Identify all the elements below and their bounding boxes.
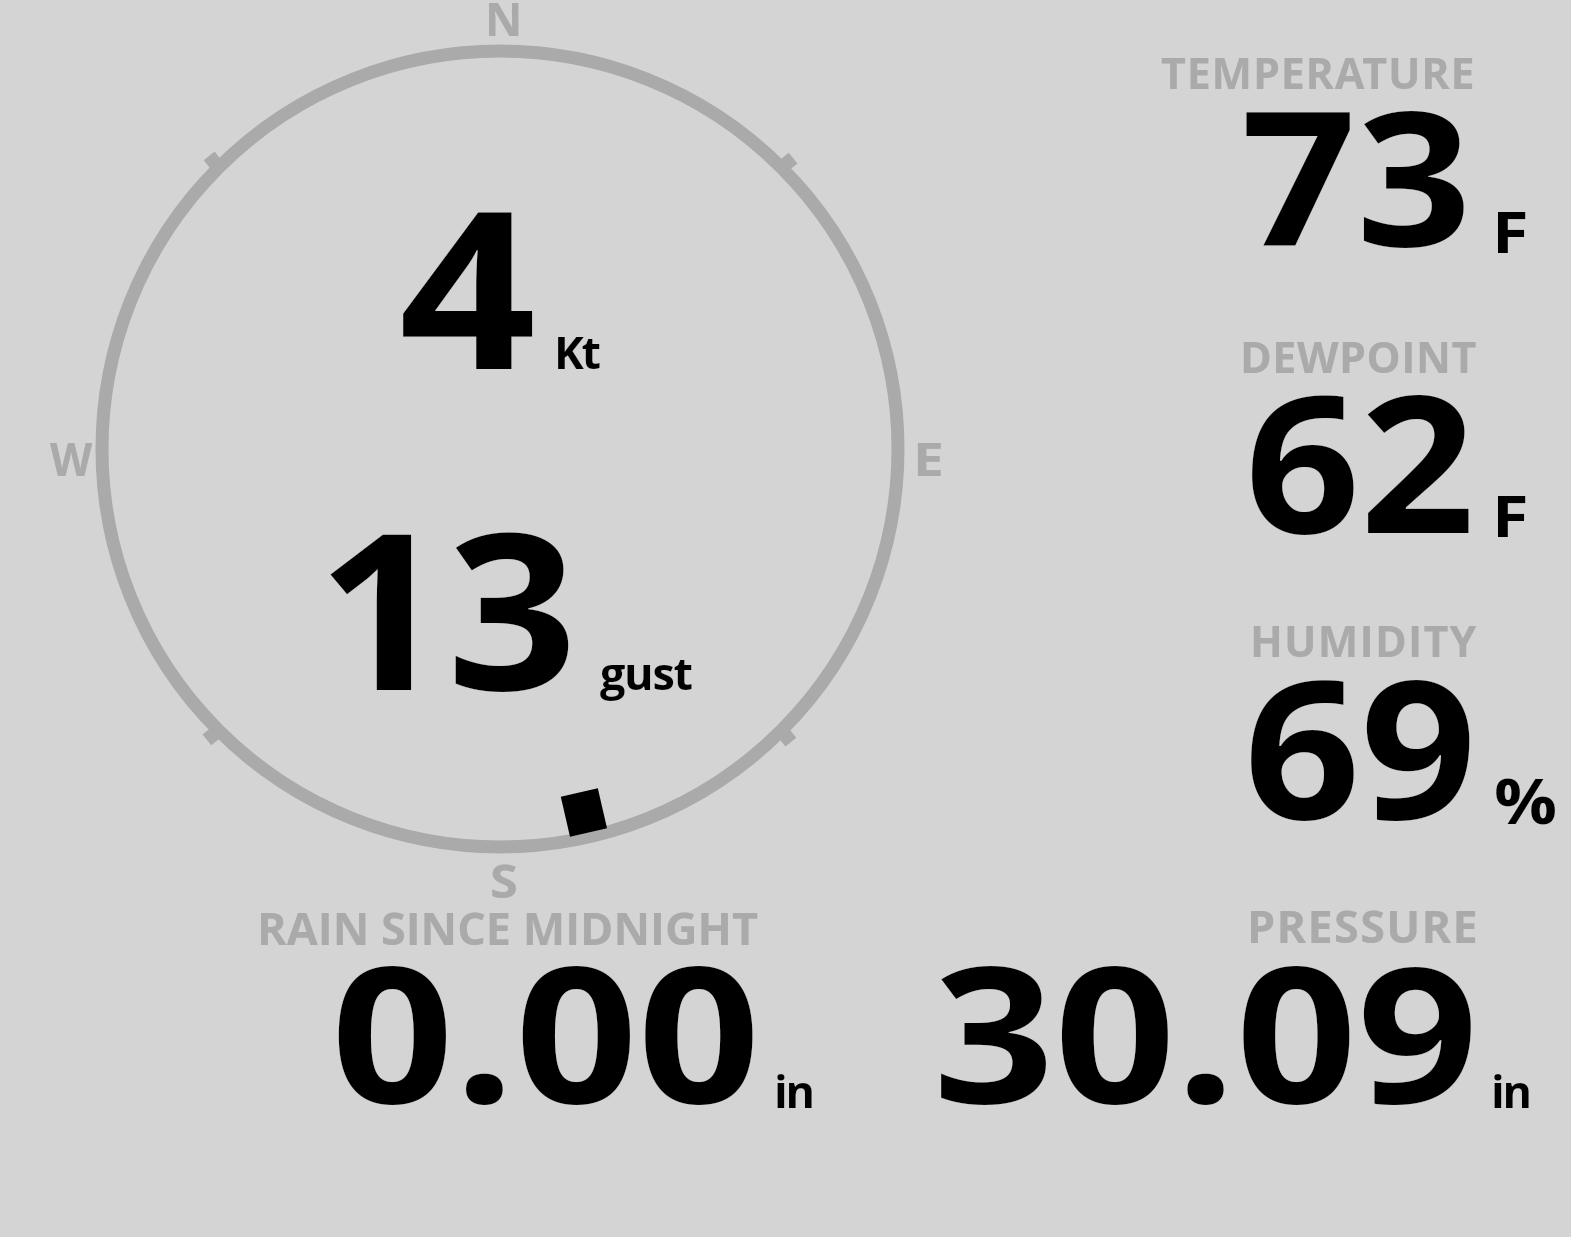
button[interactable]: Wind speed 4 knots, gusting 13, directio… <box>60 20 950 900</box>
staticText: in <box>774 1060 813 1121</box>
staticText: gust <box>600 642 692 703</box>
staticText: N <box>485 0 523 50</box>
button[interactable]: Dew point 62 degrees Fahrenheit <box>1100 315 1560 575</box>
staticText: 73 <box>1241 47 1472 300</box>
button[interactable]: Humidity 69 percent <box>1100 598 1560 860</box>
staticText: RAIN SINCE MIDNIGHT <box>257 897 758 958</box>
staticText: TEMPERATURE <box>1161 43 1476 102</box>
staticText: 0.00 <box>331 901 761 1158</box>
button[interactable]: Pressure 30.09 inches <box>900 885 1540 1135</box>
staticText: 69 <box>1244 614 1477 875</box>
staticText: % <box>1494 758 1557 842</box>
staticText: S <box>490 849 519 912</box>
staticText: 4 <box>399 134 536 434</box>
staticText: DEWPOINT <box>1240 327 1477 386</box>
staticText: 30.09 <box>933 901 1479 1158</box>
staticText: in <box>1491 1060 1530 1121</box>
staticText: F <box>1492 192 1529 270</box>
staticText: E <box>913 427 944 490</box>
staticText: PRESSURE <box>1247 895 1480 956</box>
staticText: W <box>50 427 93 490</box>
button[interactable]: Temperature 73 degrees Fahrenheit <box>1100 30 1560 290</box>
staticText: 62 <box>1245 330 1475 589</box>
staticText: HUMIDITY <box>1250 611 1478 670</box>
staticText: 13 <box>317 458 577 754</box>
staticText: Kt <box>554 321 599 382</box>
staticText: F <box>1492 476 1529 554</box>
button[interactable]: Rain since midnight 0.00 inches <box>240 885 840 1135</box>
